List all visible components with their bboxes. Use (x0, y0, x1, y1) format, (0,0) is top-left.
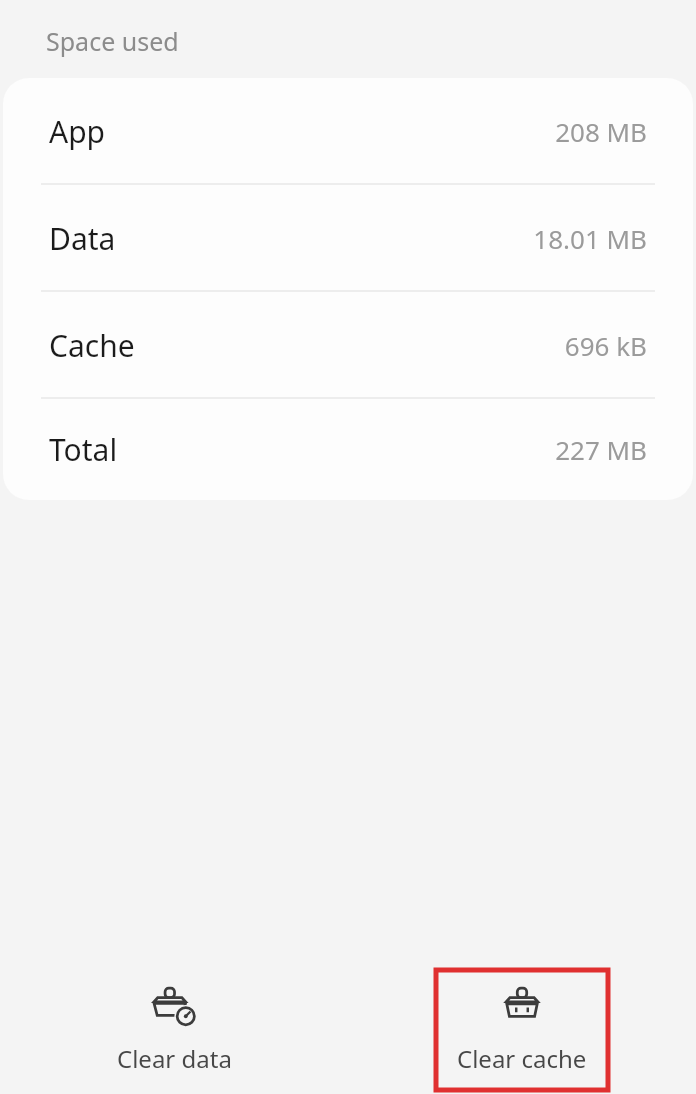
staticText: Space used (46, 24, 179, 58)
staticText: 227 MB (555, 432, 647, 467)
staticText: Total (49, 429, 118, 470)
staticText: 208 MB (555, 114, 647, 149)
button[interactable]: Cache (3, 292, 693, 399)
button[interactable]: Clear data (88, 970, 260, 1090)
staticText: Clear data (117, 1042, 232, 1075)
staticText: 696 kB (564, 328, 647, 363)
staticText: Clear cache (457, 1042, 587, 1075)
button[interactable]: Clear cache (436, 970, 608, 1090)
staticText: Cache (49, 325, 135, 366)
button[interactable]: Total (3, 399, 693, 500)
button[interactable]: App (3, 78, 693, 185)
button[interactable]: Data (3, 185, 693, 292)
staticText: 18.01 MB (533, 221, 647, 256)
staticText: App (49, 111, 106, 152)
staticText: Data (49, 218, 116, 259)
